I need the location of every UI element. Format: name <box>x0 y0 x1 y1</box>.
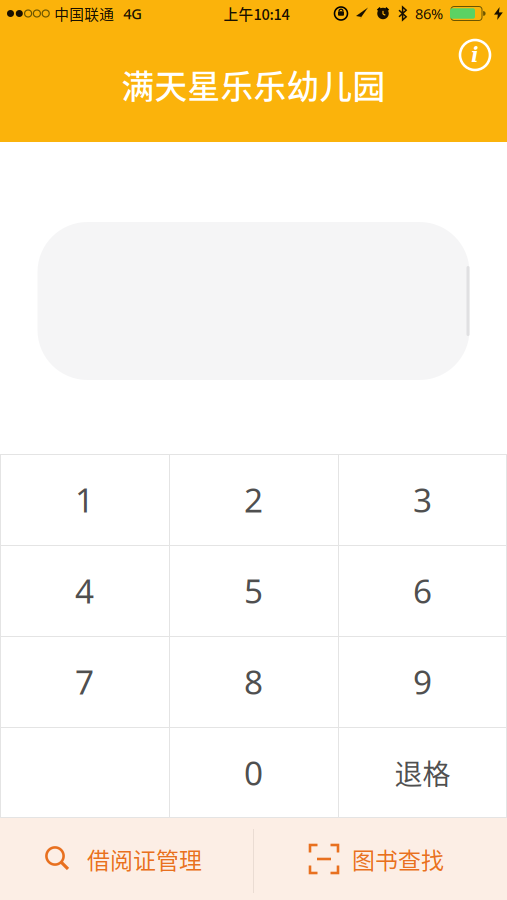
staticText: 1 <box>75 477 94 522</box>
staticText: 0 <box>244 750 263 795</box>
button[interactable]: 0 <box>169 727 338 818</box>
staticText: 图书查找 <box>352 842 444 876</box>
staticText: 2 <box>244 477 263 522</box>
button[interactable]: 1 <box>0 454 169 545</box>
staticText: 9 <box>413 659 432 704</box>
staticText: 4 <box>75 568 94 613</box>
staticText: 借阅证管理 <box>87 842 202 876</box>
staticText: 8 <box>244 659 263 704</box>
button[interactable]: 5 <box>169 545 338 636</box>
staticText: 上午10:14 <box>223 3 289 24</box>
staticText: 退格 <box>394 752 450 793</box>
staticText: 7 <box>75 659 94 704</box>
staticText: 中国联通 <box>54 3 114 24</box>
button[interactable]: 信息 <box>458 38 492 72</box>
staticText: 3 <box>413 477 432 522</box>
button[interactable]: 借阅证管理 <box>0 818 253 900</box>
staticText: 满天星乐乐幼儿园 <box>121 61 385 108</box>
button[interactable]: 6 <box>338 545 507 636</box>
button[interactable]: 2 <box>169 454 338 545</box>
button[interactable]: 3 <box>338 454 507 545</box>
button[interactable]: 7 <box>0 636 169 727</box>
button[interactable]: 8 <box>169 636 338 727</box>
staticText: 6 <box>413 568 432 613</box>
staticText: 86% <box>415 4 443 23</box>
button[interactable]: 图书查找 <box>253 818 507 900</box>
button[interactable]: 9 <box>338 636 507 727</box>
staticText: i <box>471 43 479 67</box>
button[interactable]: 退格 <box>338 727 507 818</box>
staticText: 5 <box>244 568 263 613</box>
button[interactable]: 4 <box>0 545 169 636</box>
staticText: 4G <box>123 4 142 23</box>
